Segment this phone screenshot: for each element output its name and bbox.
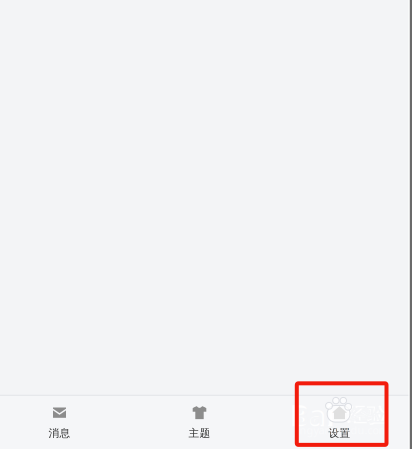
staticText: 主题 [188,427,210,440]
staticText: Bai [290,397,334,434]
staticText: 消息 [48,427,70,440]
staticText: Bai [293,400,330,431]
staticText: jingyan.baidu.com [293,423,388,437]
staticText: 经验 [350,405,384,426]
staticText: 设置 [328,427,350,440]
button[interactable]: 设置 [280,396,399,449]
button[interactable]: 消息 [0,396,119,449]
staticText: 经验 [347,403,387,428]
button[interactable]: 主题 [140,396,259,449]
